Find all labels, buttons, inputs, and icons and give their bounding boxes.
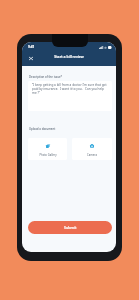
staticText: Camera — [87, 153, 97, 157]
staticText: Description of the issue* — [29, 75, 63, 79]
staticText: 9:41 — [28, 45, 35, 49]
staticText: Upload a document — [29, 127, 56, 131]
button[interactable]: Camera — [72, 138, 112, 160]
staticText: Submit — [64, 225, 77, 230]
staticText: “I keep getting a bill from a doctor I'm… — [32, 83, 108, 95]
staticText: Start a bill review — [22, 54, 116, 59]
staticText: Photo Gallery — [39, 153, 57, 157]
button[interactable]: Submit — [28, 221, 112, 234]
button[interactable]: Photo Gallery — [28, 138, 67, 160]
button[interactable]: Close — [25, 52, 37, 64]
button[interactable]: “I keep getting a bill from a doctor I'm… — [28, 81, 112, 111]
